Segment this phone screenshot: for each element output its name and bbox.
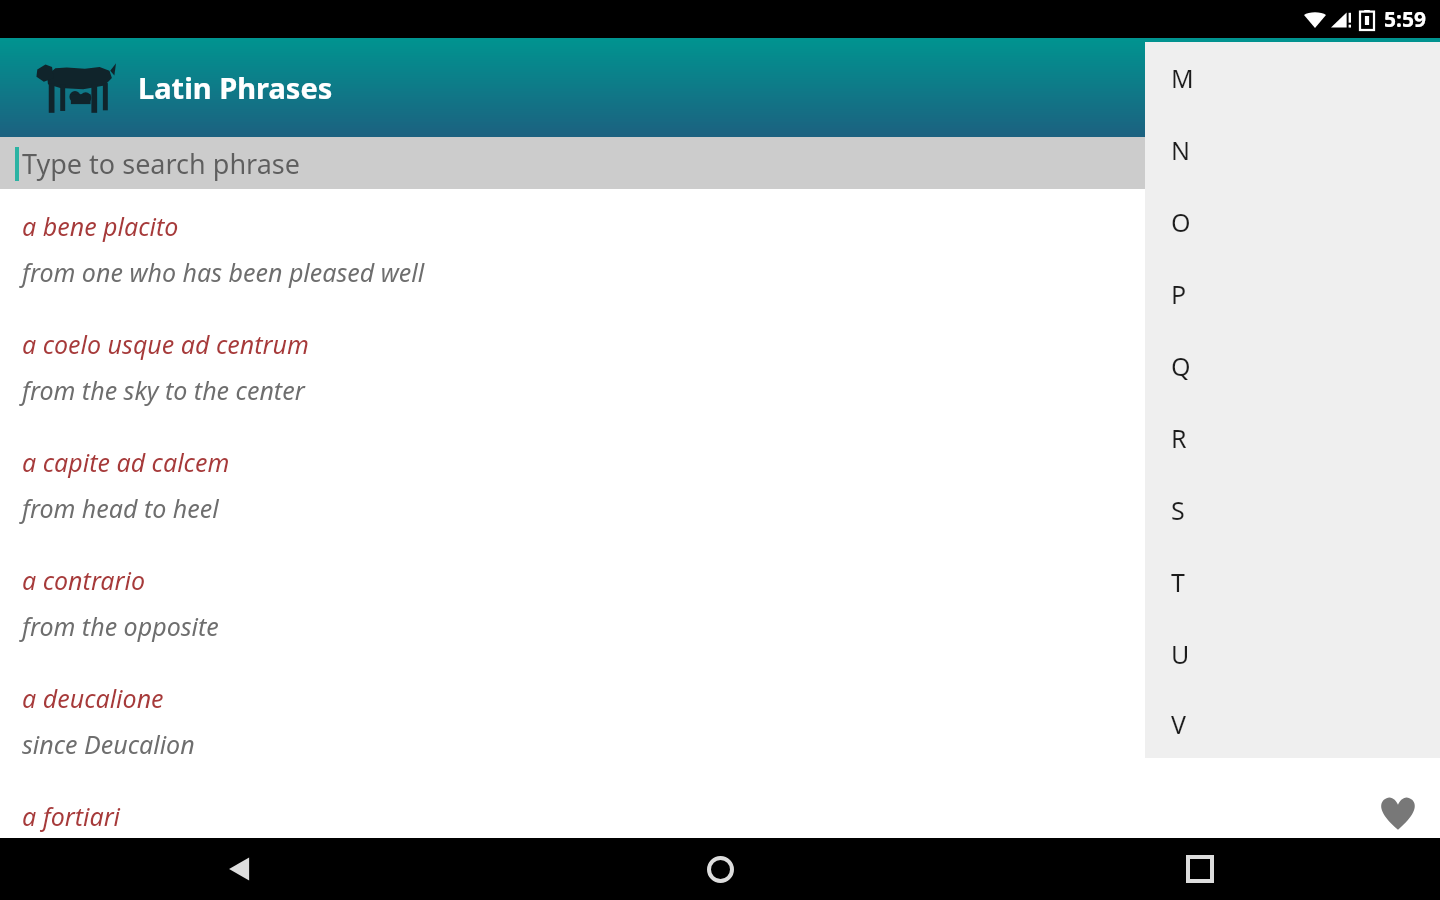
staticText: a coelo usque ad centrum [22,327,309,361]
staticText: O [1171,205,1191,239]
button[interactable]: V [1145,690,1440,758]
staticText: a capite ad calcem [22,445,230,479]
staticText: a bene placito [22,209,179,243]
staticText: a contrario [22,563,146,597]
button[interactable]: a coelo usque ad centrum [0,327,1440,407]
button[interactable]: P [1145,258,1440,330]
staticText: from the sky to the center [22,373,305,407]
button[interactable]: S [1145,474,1440,546]
button[interactable]: N [1145,114,1440,186]
button[interactable]: R [1145,402,1440,474]
button[interactable]: a deucalione [0,681,1440,761]
staticText: since Deucalion [22,727,195,761]
staticText: Latin Phrases [138,68,333,107]
staticText: 5:59 [1384,5,1426,34]
staticText: N [1171,133,1191,167]
staticText: from the opposite [22,609,219,643]
button[interactable]: Type to search phrase [0,137,1440,189]
staticText: V [1171,707,1187,741]
button[interactable]: Favorites [1371,786,1425,840]
button[interactable]: a bene placito [0,209,1440,289]
button[interactable]: a contrario [0,563,1440,643]
button[interactable]: T [1145,546,1440,618]
staticText: R [1171,421,1187,455]
staticText: U [1171,637,1190,671]
button[interactable]: Recent apps [960,838,1440,900]
staticText: T [1171,565,1185,599]
button[interactable]: Back [0,838,480,900]
button[interactable]: U [1145,618,1440,690]
staticText: S [1171,493,1185,527]
button[interactable]: O [1145,186,1440,258]
button[interactable]: Q [1145,330,1440,402]
staticText: P [1171,277,1187,311]
button[interactable]: a fortiari [0,799,1440,840]
staticText: M [1171,61,1194,95]
staticText: from one who has been pleased well [22,255,425,289]
staticText: from head to heel [22,491,219,525]
button[interactable]: M [1145,42,1440,114]
button[interactable]: a capite ad calcem [0,445,1440,525]
staticText: Q [1171,349,1191,383]
staticText: Type to search phrase [22,145,300,182]
staticText: a fortiari [22,799,121,833]
staticText: a deucalione [22,681,164,715]
button[interactable]: Home [480,838,960,900]
